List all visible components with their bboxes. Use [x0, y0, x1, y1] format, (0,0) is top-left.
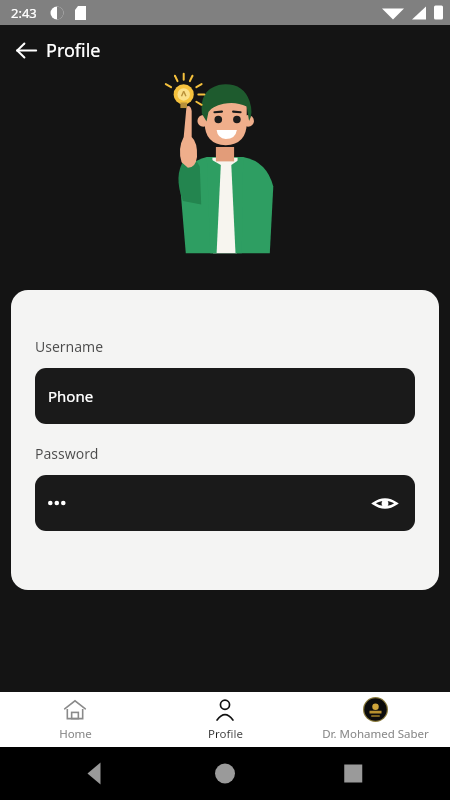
staticText: Password — [35, 444, 99, 463]
staticText: Home — [59, 726, 92, 742]
staticText: Username — [35, 337, 104, 356]
staticText: Profile — [46, 38, 101, 63]
button[interactable]: Dr. Mohamed Saber — [300, 692, 450, 747]
button[interactable]: Phone — [35, 368, 415, 424]
staticText: Phone — [48, 386, 94, 406]
button[interactable]: Show password — [35, 475, 415, 531]
button[interactable]: Home — [0, 692, 150, 747]
button[interactable]: Back — [8, 32, 44, 68]
staticText: Profile — [208, 726, 243, 742]
button[interactable]: Show password — [368, 486, 402, 520]
staticText: 2:43 — [11, 4, 37, 22]
staticText: Dr. Mohamed Saber — [322, 726, 429, 742]
button[interactable]: Profile — [150, 692, 300, 747]
